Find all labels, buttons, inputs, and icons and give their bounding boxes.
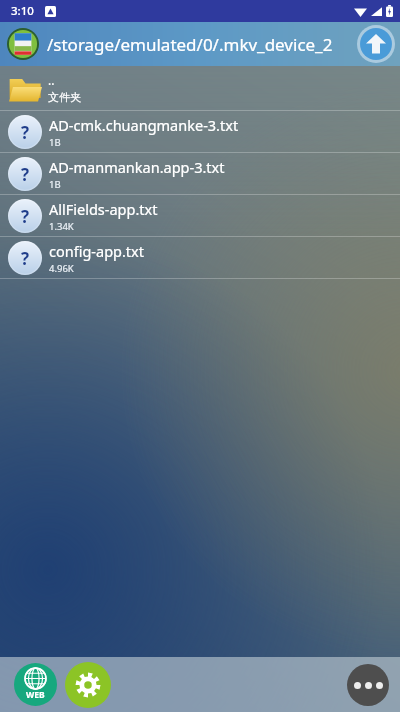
staticText: 1B	[49, 136, 61, 149]
staticText: ..	[48, 72, 55, 88]
staticText: WEB	[26, 689, 45, 701]
button[interactable]: Web browser	[14, 663, 57, 706]
staticText: AllFields-app.txt	[49, 199, 158, 219]
button[interactable]: App icon	[7, 28, 39, 60]
staticText: 文件夹	[48, 90, 81, 104]
button[interactable]: ?	[0, 237, 400, 278]
button[interactable]: ..	[0, 66, 400, 110]
button[interactable]: More options	[347, 664, 389, 706]
staticText: 4.96K	[49, 262, 74, 275]
staticText: ?	[21, 121, 30, 144]
button[interactable]: Go up one folder	[357, 25, 395, 63]
button[interactable]: ?	[0, 195, 400, 236]
staticText: ?	[21, 205, 30, 228]
staticText: 1.34K	[49, 220, 74, 233]
button[interactable]: Settings	[65, 662, 111, 708]
staticText: 1B	[49, 178, 61, 191]
staticText: 3:10	[11, 3, 34, 19]
staticText: ?	[21, 163, 30, 186]
staticText: config-app.txt	[49, 241, 145, 261]
staticText: ?	[21, 247, 30, 270]
button[interactable]: ?	[0, 111, 400, 152]
staticText: AD-cmk.chuangmanke-3.txt	[49, 115, 239, 135]
button[interactable]: ?	[0, 153, 400, 194]
staticText: AD-manmankan.app-3.txt	[49, 157, 225, 177]
staticText: /storage/emulated/0/.mkv_device_2	[47, 33, 353, 56]
